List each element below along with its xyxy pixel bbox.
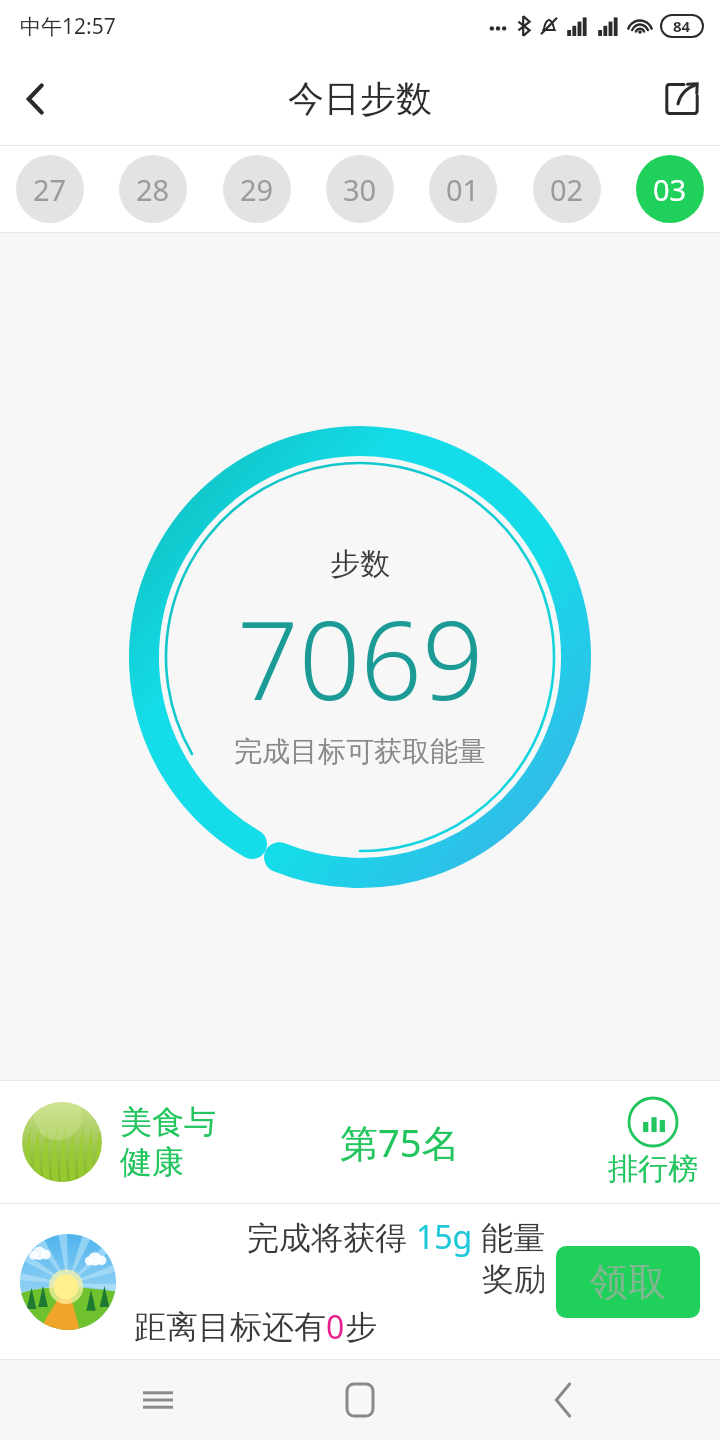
- staticText: 能量: [473, 1215, 546, 1259]
- staticText: 27: [33, 170, 67, 209]
- button[interactable]: 02: [533, 155, 601, 223]
- staticText: 排行榜: [608, 1150, 698, 1188]
- button[interactable]: Home: [315, 1360, 405, 1440]
- button[interactable]: Recents: [113, 1360, 203, 1440]
- button[interactable]: 01: [429, 155, 497, 223]
- button[interactable]: 领取: [556, 1246, 700, 1318]
- staticText: 15g: [416, 1215, 473, 1259]
- staticText: 领取: [590, 1258, 666, 1306]
- staticText: 今日步数: [288, 76, 432, 121]
- staticText: 完成将获得: [247, 1215, 416, 1259]
- staticText: 01: [446, 170, 480, 209]
- button[interactable]: 27: [16, 155, 84, 223]
- button[interactable]: Back: [0, 63, 72, 135]
- staticText: 距离目标还有: [134, 1307, 326, 1347]
- staticText: 84: [673, 16, 691, 36]
- button[interactable]: 美食与 健康: [0, 1081, 720, 1203]
- staticText: 29: [240, 170, 274, 209]
- button[interactable]: 排行榜: [608, 1096, 698, 1188]
- staticText: 0: [326, 1305, 345, 1349]
- staticText: 步: [345, 1307, 377, 1347]
- staticText: 02: [550, 170, 584, 209]
- staticText: 7069: [237, 585, 484, 732]
- staticText: 28: [136, 170, 170, 209]
- button[interactable]: 30: [326, 155, 394, 223]
- button[interactable]: 03: [636, 155, 704, 223]
- button[interactable]: Back: [518, 1360, 608, 1440]
- staticText: 第75名: [340, 1116, 460, 1168]
- button[interactable]: Share: [644, 61, 720, 137]
- staticText: 中午12:57: [20, 12, 116, 41]
- staticText: 03: [653, 170, 687, 209]
- staticText: 美食与 健康: [120, 1102, 216, 1182]
- staticText: 步数: [330, 545, 390, 583]
- staticText: 完成目标可获取能量: [234, 734, 486, 769]
- button[interactable]: 28: [119, 155, 187, 223]
- staticText: 奖励: [482, 1259, 546, 1299]
- staticText: 30: [343, 170, 377, 209]
- button[interactable]: 29: [223, 155, 291, 223]
